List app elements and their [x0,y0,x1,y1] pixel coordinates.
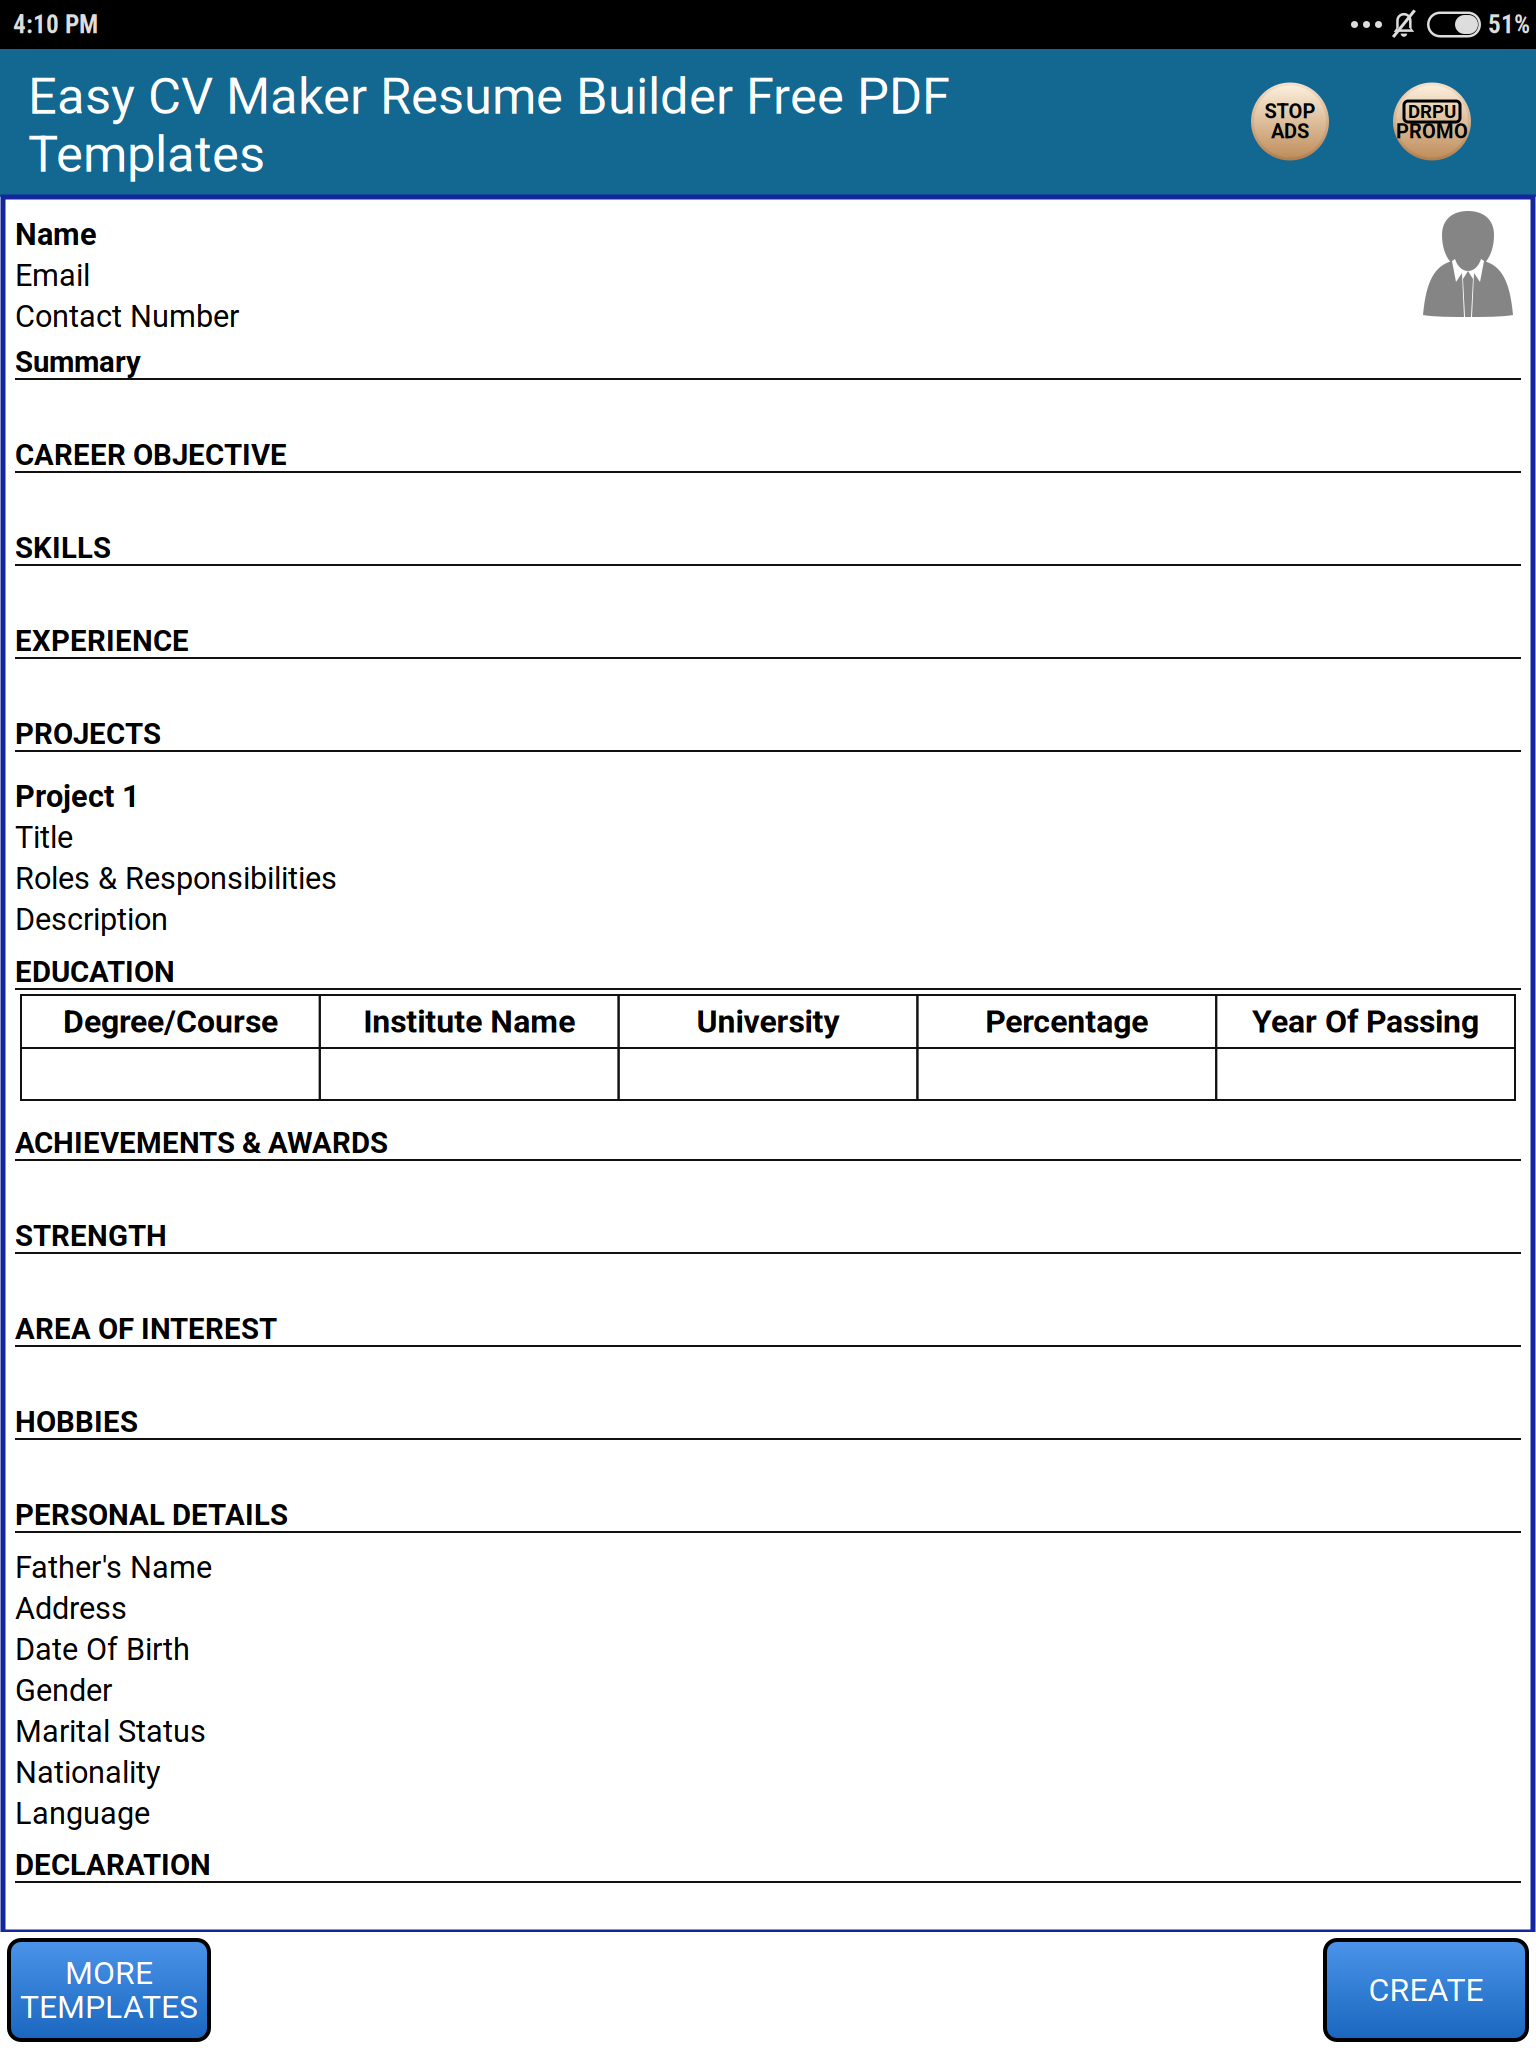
staticText: Title [15,819,73,855]
staticText: Description [15,901,168,937]
staticText: CREATE [1368,1971,1483,2009]
staticText: Percentage [985,1003,1148,1040]
staticText: MORE [65,1954,153,1992]
staticText: ADS [1271,120,1309,143]
staticText: 4:10 PM [13,10,98,39]
staticText: HOBBIES [15,1405,138,1439]
staticText: AREA OF INTEREST [15,1312,277,1346]
staticText: Roles & Responsibilities [15,860,337,896]
staticText: Gender [15,1672,112,1708]
staticText: Templates [28,125,265,184]
button[interactable]: MORE [9,1940,209,2040]
staticText: Degree/Course [63,1003,278,1040]
staticText: Easy CV Maker Resume Builder Free PDF [28,67,950,126]
staticText: Name [15,216,97,252]
staticText: Year Of Passing [1252,1003,1479,1040]
staticText: Contact Number [15,298,239,334]
staticText: EDUCATION [15,955,175,989]
staticText: Institute Name [363,1003,575,1040]
staticText: University [696,1003,839,1040]
staticText: STRENGTH [15,1219,167,1253]
staticText: PROJECTS [15,717,161,751]
staticText: SKILLS [15,531,111,565]
staticText: DRPU [1408,101,1456,122]
staticText: ACHIEVEMENTS & AWARDS [15,1126,388,1160]
button[interactable]: STOP ADS [1249,80,1331,162]
staticText: Date Of Birth [15,1631,190,1667]
staticText: Project 1 [15,778,140,814]
staticText: EXPERIENCE [15,624,189,658]
staticText: Summary [15,345,141,379]
staticText: Nationality [15,1754,161,1790]
staticText: PROMO [1396,120,1468,143]
staticText: STOP [1264,100,1315,123]
staticText: Father's Name [15,1549,212,1585]
staticText: TEMPLATES [20,1988,198,2026]
staticText: Marital Status [15,1713,206,1749]
staticText: PERSONAL DETAILS [15,1498,288,1532]
button[interactable]: DRPU PROMO [1391,80,1473,162]
staticText: Address [15,1590,127,1626]
button[interactable]: CREATE [1325,1940,1527,2040]
staticText: 51% [1488,10,1530,39]
staticText: CAREER OBJECTIVE [15,438,287,472]
staticText: DECLARATION [15,1848,211,1882]
staticText: Language [15,1795,150,1831]
staticText: Email [15,257,90,293]
